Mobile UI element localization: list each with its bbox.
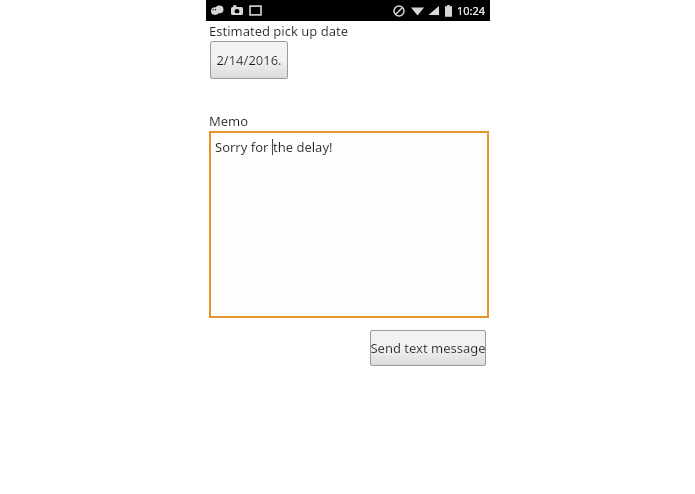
button[interactable]: Send text message bbox=[370, 330, 486, 366]
staticText: Sorry for bbox=[215, 138, 272, 156]
staticText: 2/14/2016. bbox=[216, 51, 282, 69]
button[interactable]: Sorry for bbox=[209, 131, 489, 318]
staticText: the delay! bbox=[273, 138, 333, 156]
staticText: 10:24 bbox=[457, 3, 486, 18]
staticText: Memo bbox=[209, 112, 249, 130]
staticText: Send text message bbox=[370, 339, 486, 357]
staticText: Estimated pick up date bbox=[209, 22, 348, 40]
button[interactable]: 2/14/2016. bbox=[210, 41, 288, 79]
